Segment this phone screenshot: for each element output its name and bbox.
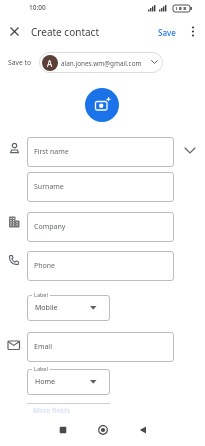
- button[interactable]: [97, 424, 109, 436]
- button[interactable]: Mobile: [27, 295, 110, 321]
- staticText: Label: [34, 291, 48, 298]
- button[interactable]: [57, 424, 69, 436]
- button[interactable]: [184, 147, 196, 155]
- staticText: More fields: [33, 406, 70, 416]
- button[interactable]: First name: [27, 137, 174, 167]
- button[interactable]: A: [39, 52, 163, 73]
- button[interactable]: Company: [27, 212, 174, 242]
- staticText: 10:00: [29, 3, 46, 12]
- staticText: alan.jones.wm@gmail.com: [61, 59, 142, 68]
- staticText: Phone: [34, 261, 56, 271]
- button[interactable]: [85, 88, 119, 122]
- staticText: Save: [158, 27, 176, 38]
- staticText: Company: [34, 222, 66, 232]
- button[interactable]: [137, 424, 149, 436]
- button[interactable]: Phone: [27, 251, 174, 281]
- button[interactable]: Surname: [27, 172, 174, 202]
- button[interactable]: Email: [27, 332, 174, 362]
- staticText: Home: [35, 377, 55, 387]
- staticText: Mobile: [35, 303, 58, 313]
- staticText: Create contact: [31, 25, 100, 39]
- staticText: Surname: [34, 182, 64, 192]
- staticText: Label: [34, 365, 48, 372]
- button[interactable]: [190, 26, 196, 38]
- staticText: First name: [34, 147, 69, 157]
- button[interactable]: Save: [152, 24, 182, 40]
- button[interactable]: Home: [27, 369, 110, 395]
- staticText: A: [47, 58, 53, 69]
- button[interactable]: [10, 27, 19, 36]
- staticText: Email: [34, 342, 52, 352]
- staticText: Save to: [8, 58, 32, 67]
